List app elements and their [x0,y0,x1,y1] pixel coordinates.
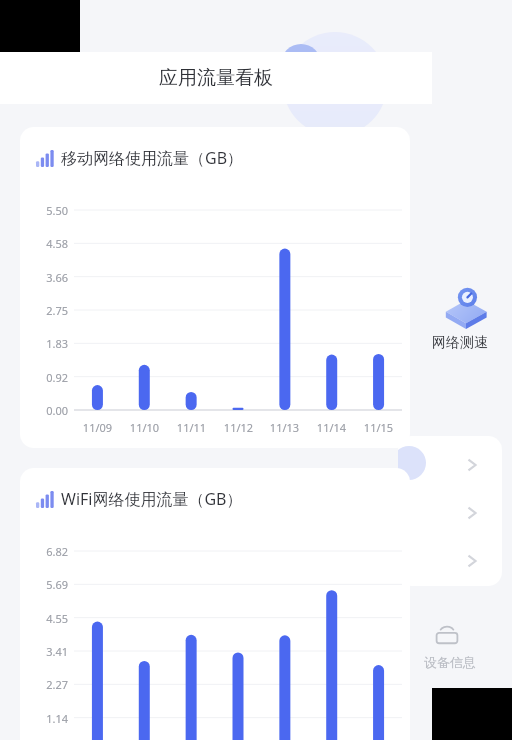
staticText: 11/11 [168,420,215,435]
other: 图表 [34,150,54,167]
staticText: 2.27 [24,677,68,692]
staticText: 移动网络使用流量（GB） [61,147,244,169]
other: 图表 [34,491,54,508]
staticText: 11/13 [261,420,308,435]
staticText: 3.66 [24,270,68,285]
button[interactable]: 设备信息 [418,618,494,680]
staticText: 6.82 [24,544,68,559]
staticText: 3.41 [24,644,68,659]
staticText: 1.14 [24,711,68,726]
staticText: 11/14 [308,420,355,435]
staticText: WiFi网络使用流量（GB） [61,488,243,510]
button[interactable]: 图表 [20,468,410,740]
button[interactable]: 打开 [398,542,502,580]
staticText: 5.69 [24,577,68,592]
button[interactable]: 打开 [398,494,502,532]
staticText: 应用流量看板 [159,66,273,90]
staticText: 1.83 [24,336,68,351]
staticText: 11/12 [215,420,262,435]
staticText: 2.75 [24,303,68,318]
button[interactable]: 图表 [20,127,410,448]
staticText: 0.00 [24,403,68,418]
staticText: 4.55 [24,611,68,626]
button[interactable]: 网络测速 [424,282,508,362]
staticText: 11/15 [355,420,402,435]
staticText: 设备信息 [424,654,476,670]
button[interactable]: 打开 [398,446,502,484]
button[interactable]: 应用流量看板 [0,52,432,104]
staticText: 11/10 [121,420,168,435]
staticText: 0.92 [24,370,68,385]
staticText: 4.58 [24,236,68,251]
staticText: 11/09 [74,420,121,435]
staticText: 网络测速 [432,334,488,352]
staticText: 5.50 [24,203,68,218]
